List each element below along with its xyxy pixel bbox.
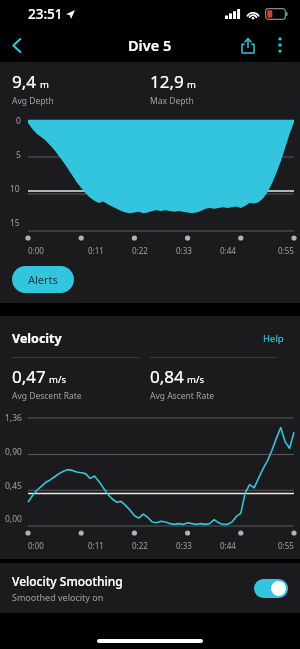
button[interactable]: Back	[0, 28, 34, 62]
staticText: 23:51	[28, 5, 63, 23]
staticText: 0:22	[132, 245, 148, 256]
staticText: m	[187, 78, 196, 91]
button[interactable]: Help	[259, 328, 288, 349]
staticText: Alerts	[28, 272, 58, 287]
staticText: Avg Descent Rate	[12, 390, 82, 402]
staticText: m/s	[49, 373, 66, 386]
staticText: 0:00	[28, 245, 44, 256]
staticText: Smoothed velocity on	[12, 591, 104, 603]
button[interactable]: Alerts	[12, 266, 74, 293]
staticText: 0,90	[5, 446, 22, 458]
staticText: Avg Ascent Rate	[150, 390, 215, 402]
staticText: Velocity Smoothing	[12, 573, 123, 589]
staticText: 0:44	[220, 540, 236, 551]
staticText: 0:11	[88, 540, 104, 551]
staticText: m	[40, 78, 49, 91]
staticText: 0:22	[132, 540, 148, 551]
staticText: 12,9	[150, 70, 184, 93]
staticText: Max Depth	[150, 95, 194, 107]
staticText: 0:11	[88, 245, 104, 256]
staticText: 0,84	[150, 365, 184, 388]
staticText: 0	[16, 115, 21, 127]
button[interactable]: Share	[232, 29, 264, 61]
staticText: 0,45	[5, 480, 22, 492]
staticText: Help	[263, 332, 284, 345]
staticText: 0:00	[28, 540, 44, 551]
staticText: 0,47	[12, 365, 46, 388]
staticText: Dive 5	[128, 35, 172, 55]
staticText: 0:44	[220, 245, 236, 256]
staticText: Avg Depth	[12, 95, 54, 107]
staticText: 5	[16, 149, 21, 161]
staticText: Velocity	[12, 330, 62, 347]
staticText: 0:33	[176, 245, 192, 256]
staticText: 1,36	[5, 412, 22, 424]
staticText: 15	[10, 217, 20, 229]
button[interactable]: More options	[264, 29, 296, 61]
staticText: 0:55	[278, 245, 294, 256]
staticText: 0,00	[5, 513, 22, 525]
button[interactable]: Velocity Smoothing	[0, 563, 300, 613]
staticText: 9,4	[12, 70, 37, 93]
staticText: 0:33	[176, 540, 192, 551]
staticText: m/s	[187, 373, 204, 386]
staticText: 0:55	[278, 540, 294, 551]
staticText: 10	[10, 183, 20, 195]
